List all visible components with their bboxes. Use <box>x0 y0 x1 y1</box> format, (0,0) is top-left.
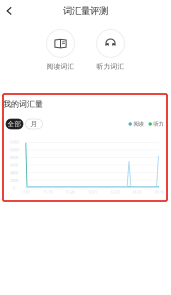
button[interactable]: 听力词汇 <box>90 29 130 70</box>
staticText: 12-20 <box>110 189 119 195</box>
button[interactable]: 全部 <box>6 119 23 129</box>
button[interactable]: Back <box>0 0 19 21</box>
staticText: 10000 <box>9 147 19 152</box>
staticText: 12000 <box>9 139 19 145</box>
staticText: 阅读词汇 <box>46 62 74 71</box>
staticText: 0 <box>13 185 15 191</box>
staticText: 月 <box>30 120 37 128</box>
staticText: 听力词汇 <box>96 62 124 71</box>
staticText: 8000 <box>10 155 18 160</box>
button[interactable]: 阅读词汇 <box>40 29 80 70</box>
staticText: 阅读 <box>133 121 143 127</box>
staticText: 2000 <box>10 178 18 183</box>
staticText: 11-20 <box>66 189 75 195</box>
staticText: 4000 <box>10 170 18 175</box>
staticText: 6000 <box>10 162 18 168</box>
staticText: 01-01 <box>132 189 141 195</box>
staticText: 听力 <box>153 121 163 127</box>
button[interactable]: 月 <box>25 119 42 129</box>
staticText: 01-10 <box>155 189 164 195</box>
staticText: 12-01 <box>88 189 97 195</box>
staticText: 词汇量评测 <box>63 5 108 17</box>
staticText: 11-10 <box>43 189 52 195</box>
staticText: 全部 <box>7 120 21 128</box>
staticText: 我的词汇量 <box>3 99 43 109</box>
staticText: 11-01 <box>21 189 30 195</box>
